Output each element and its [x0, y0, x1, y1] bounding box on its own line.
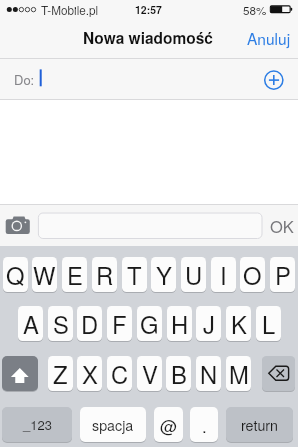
button[interactable]: return	[226, 407, 293, 442]
button[interactable]: C	[107, 356, 132, 391]
button[interactable]: Anuluj	[241, 21, 297, 55]
staticText: Z	[53, 357, 68, 391]
staticText: Anuluj	[247, 27, 291, 49]
staticText: H	[171, 307, 189, 341]
staticText: F	[112, 307, 127, 341]
button[interactable]: S	[48, 306, 73, 341]
button[interactable]: X	[77, 356, 102, 391]
staticText: W	[33, 258, 56, 292]
staticText: OK	[270, 214, 294, 238]
staticText: S	[53, 307, 69, 341]
button[interactable]: K	[226, 306, 251, 341]
staticText: K	[231, 307, 247, 341]
button[interactable]: B	[166, 356, 191, 391]
button[interactable]: Y	[151, 257, 176, 292]
button[interactable]: Z	[48, 356, 73, 391]
button[interactable]: I	[211, 257, 236, 292]
staticText: return	[241, 415, 279, 435]
button[interactable]: D	[77, 306, 102, 341]
staticText: M	[229, 357, 249, 391]
button[interactable]: @	[154, 407, 183, 442]
staticText: Y	[156, 258, 172, 292]
staticText: G	[140, 307, 159, 341]
button[interactable]: W	[32, 257, 57, 292]
button[interactable]	[2, 356, 38, 391]
staticText: R	[96, 258, 114, 292]
button[interactable]: M	[226, 356, 251, 391]
staticText: I	[220, 258, 227, 292]
button[interactable]	[262, 356, 295, 391]
button[interactable]: Q	[3, 257, 28, 292]
staticText: .	[202, 413, 207, 437]
staticText: T-Mobile.pl	[41, 2, 99, 19]
staticText: C	[111, 357, 129, 391]
button[interactable]: J	[196, 306, 221, 341]
staticText: 58%	[243, 2, 267, 19]
staticText: D	[81, 307, 99, 341]
button[interactable]: .	[190, 407, 218, 442]
staticText: O	[243, 258, 262, 292]
button[interactable]: L	[256, 306, 281, 341]
staticText: T	[127, 258, 142, 292]
staticText: _123	[23, 415, 52, 434]
staticText: U	[185, 258, 203, 292]
staticText: Do:	[14, 70, 35, 89]
button[interactable]	[38, 213, 262, 239]
staticText: Nowa wiadomość	[83, 27, 213, 49]
button[interactable]: O	[240, 257, 265, 292]
button[interactable]: T	[122, 257, 147, 292]
staticText: N	[200, 357, 218, 391]
staticText: V	[142, 357, 158, 391]
staticText: spacja	[92, 415, 134, 435]
staticText: Q	[6, 258, 25, 292]
button[interactable]: P	[270, 257, 295, 292]
staticText: E	[67, 258, 83, 292]
button[interactable]: spacja	[80, 407, 146, 442]
button[interactable]: Camera	[4, 212, 34, 240]
button[interactable]: H	[167, 306, 192, 341]
staticText: A	[23, 307, 39, 341]
button[interactable]: A	[18, 306, 43, 341]
staticText: B	[171, 357, 187, 391]
button[interactable]: U	[181, 257, 206, 292]
staticText: J	[203, 307, 215, 341]
staticText: P	[275, 258, 291, 292]
button[interactable]: G	[137, 306, 162, 341]
staticText: X	[82, 357, 98, 391]
button[interactable]: N	[196, 356, 221, 391]
button[interactable]: E	[62, 257, 87, 292]
staticText: L	[262, 307, 276, 341]
button[interactable]: _123	[2, 407, 72, 442]
button[interactable]: V	[137, 356, 162, 391]
button[interactable]: OK	[266, 211, 298, 241]
staticText: 12:57	[135, 2, 162, 17]
button[interactable]: R	[92, 257, 117, 292]
button[interactable]: F	[107, 306, 132, 341]
staticText: @	[160, 413, 178, 437]
